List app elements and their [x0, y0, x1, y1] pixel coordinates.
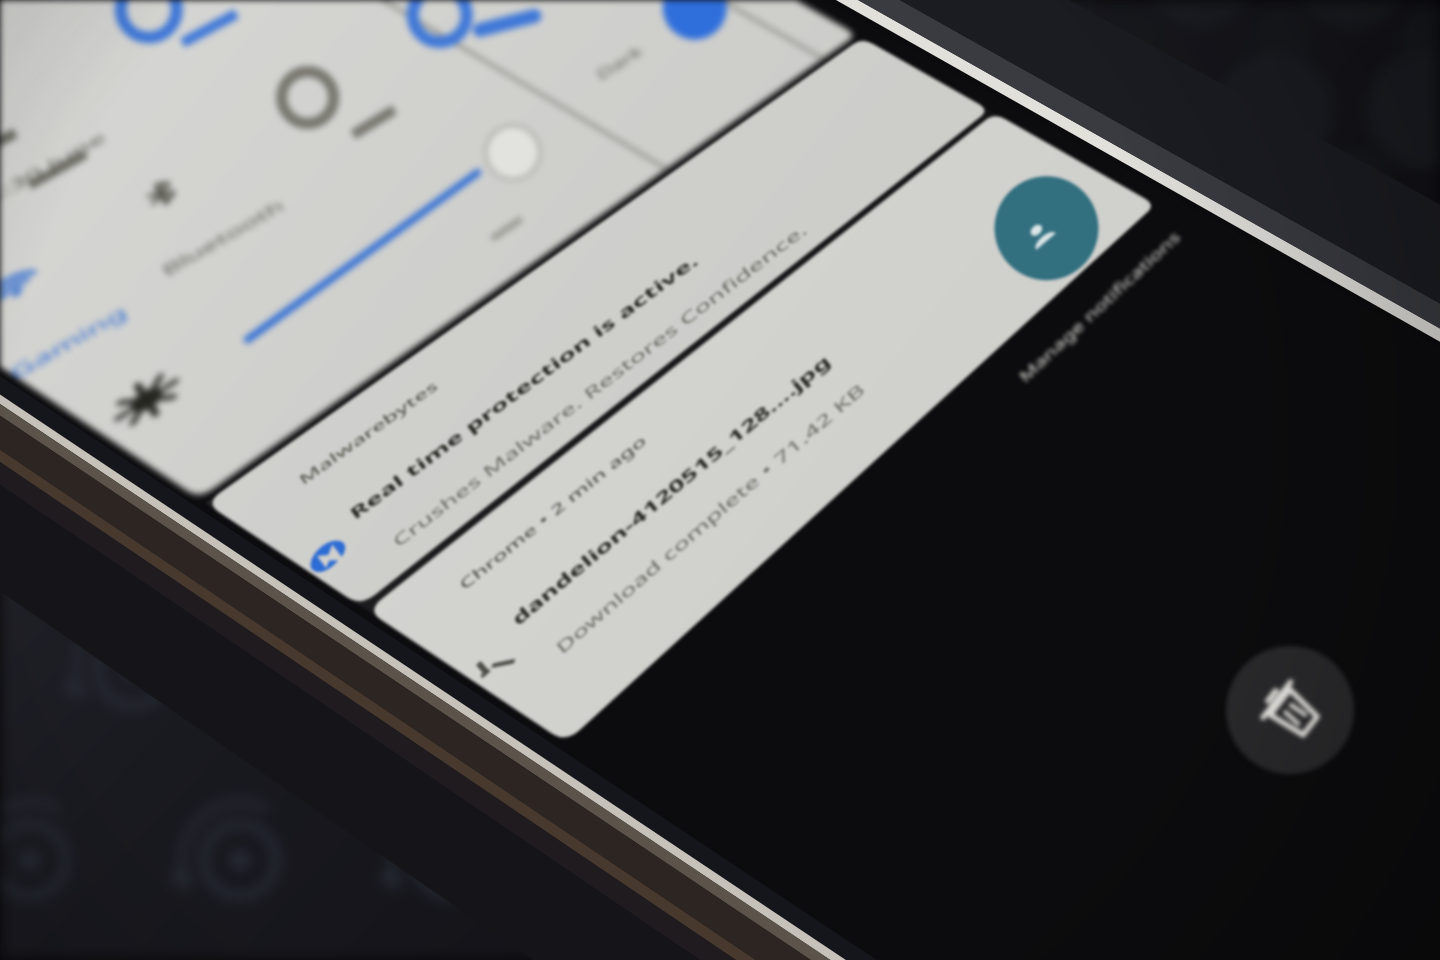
staticText: Chrome • 2 min ago — [455, 431, 650, 593]
button[interactable] — [367, 0, 1440, 946]
staticText: Malwarebytes — [295, 376, 442, 488]
button[interactable]: Manage notifications — [1008, 220, 1191, 393]
staticText: Bluetooth — [158, 194, 288, 281]
button[interactable]: Gaming — [0, 152, 204, 404]
staticText: Crushes Malware. Restores Confidence. — [388, 219, 811, 551]
staticText: Dark — [593, 41, 646, 84]
button[interactable]: Clear all notifications — [1226, 646, 1354, 774]
staticText: Gaming — [6, 300, 131, 385]
button[interactable]: Bluetooth — [103, 79, 356, 295]
button[interactable] — [205, 0, 1255, 790]
staticText: Real time protection is active. — [345, 249, 702, 524]
staticText: Download complete • 71.42 KB — [551, 378, 869, 658]
button[interactable]: Dark — [568, 0, 700, 106]
staticText: 4:30 June — [0, 126, 110, 209]
staticText: Manage notifications — [1014, 227, 1184, 386]
button[interactable]: Brightness — [83, 345, 210, 455]
staticText: dandelion-4120515_128….jpg — [507, 350, 835, 630]
button[interactable]: Account — [988, 184, 1091, 284]
